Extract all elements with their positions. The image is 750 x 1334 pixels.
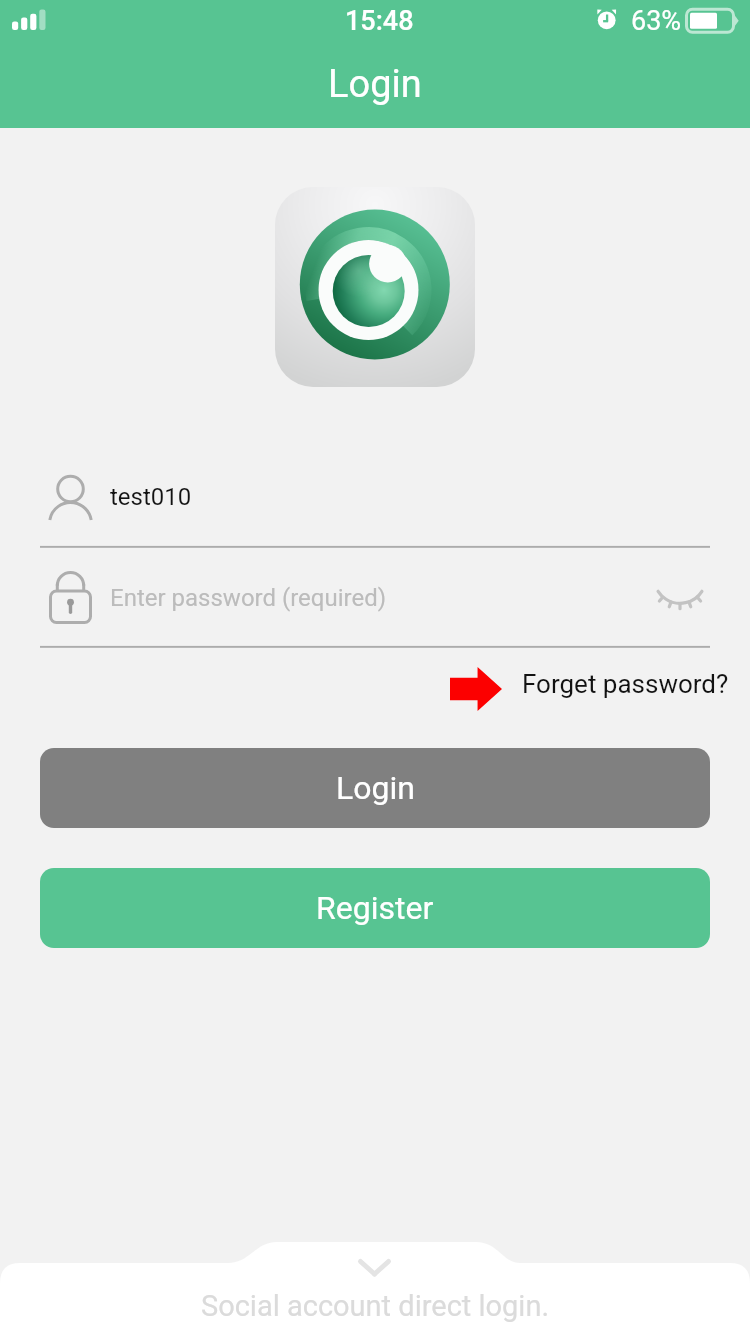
staticText: Login <box>328 62 422 107</box>
staticText: Login <box>336 769 415 807</box>
button[interactable]: Register <box>40 868 710 948</box>
staticText: 15:48 <box>345 5 414 37</box>
staticText: Enter password (required) <box>110 584 387 612</box>
staticText: Register <box>316 889 434 927</box>
staticText: test010 <box>110 483 192 511</box>
staticText: Social account direct login. <box>0 1289 750 1323</box>
button[interactable]: Forget password? <box>522 669 729 699</box>
button[interactable]: Show password <box>645 570 715 632</box>
button[interactable]: Login <box>40 748 710 828</box>
staticText: 63% <box>631 5 682 37</box>
staticText: Forget password? <box>522 669 729 699</box>
